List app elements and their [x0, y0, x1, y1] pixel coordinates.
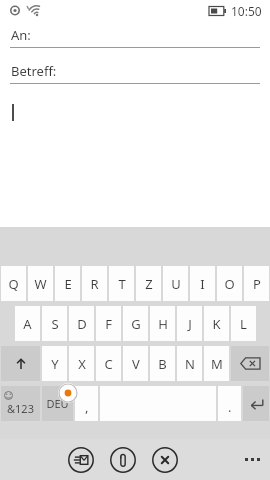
- staticText: X: [78, 355, 86, 373]
- button[interactable]: Betreff:: [0, 58, 270, 94]
- staticText: R: [90, 275, 99, 293]
- staticText: G: [131, 315, 141, 333]
- button[interactable]: More options: [245, 458, 260, 461]
- staticText: M: [211, 355, 223, 373]
- button[interactable]: F: [96, 306, 121, 341]
- button[interactable]: T: [109, 266, 134, 301]
- staticText: C: [104, 355, 113, 373]
- staticText: Z: [145, 275, 153, 293]
- button[interactable]: Q: [1, 266, 26, 301]
- staticText: B: [158, 355, 167, 373]
- staticText: J: [188, 315, 192, 333]
- staticText: E: [64, 275, 72, 293]
- button[interactable]: Y: [42, 346, 67, 381]
- button[interactable]: Shift: [1, 346, 40, 381]
- button[interactable]: Send: [66, 445, 96, 475]
- staticText: K: [212, 315, 221, 333]
- staticText: I: [200, 275, 205, 293]
- button[interactable]: I: [190, 266, 215, 301]
- button[interactable]: Backspace: [231, 346, 269, 381]
- button[interactable]: O: [217, 266, 242, 301]
- staticText: U: [171, 275, 181, 293]
- button[interactable]: S: [42, 306, 67, 341]
- staticText: ,: [85, 398, 89, 416]
- button[interactable]: M: [204, 346, 229, 381]
- staticText: &123: [7, 401, 34, 416]
- button[interactable]: B: [150, 346, 175, 381]
- button[interactable]: L: [231, 306, 256, 341]
- staticText: Y: [51, 355, 59, 373]
- button[interactable]: X: [69, 346, 94, 381]
- button[interactable]: Attach: [108, 445, 138, 475]
- button[interactable]: G: [123, 306, 148, 341]
- button[interactable]: K: [204, 306, 229, 341]
- button[interactable]: .: [218, 386, 241, 421]
- staticText: L: [240, 315, 247, 333]
- button[interactable]: DEU: [42, 386, 73, 421]
- button[interactable]: Z: [136, 266, 161, 301]
- button[interactable]: J: [177, 306, 202, 341]
- staticText: W: [34, 275, 47, 293]
- button[interactable]: Close: [150, 445, 180, 475]
- staticText: S: [51, 315, 59, 333]
- button[interactable]: N: [177, 346, 202, 381]
- staticText: Betreff:: [11, 62, 57, 80]
- staticText: DEU: [46, 396, 69, 411]
- staticText: A: [23, 315, 32, 333]
- button[interactable]: U: [163, 266, 188, 301]
- staticText: T: [118, 275, 126, 293]
- staticText: D: [77, 315, 87, 333]
- staticText: P: [253, 275, 261, 293]
- staticText: F: [105, 315, 112, 333]
- staticText: N: [185, 355, 195, 373]
- button[interactable]: W: [28, 266, 53, 301]
- button[interactable]: [0, 94, 270, 128]
- button[interactable]: Enter: [243, 386, 269, 421]
- button[interactable]: P: [244, 266, 269, 301]
- button[interactable]: E: [55, 266, 80, 301]
- button[interactable]: An:: [0, 22, 270, 58]
- button[interactable]: ,: [75, 386, 98, 421]
- button[interactable]: V: [123, 346, 148, 381]
- staticText: An:: [11, 26, 31, 44]
- button[interactable]: D: [69, 306, 94, 341]
- staticText: V: [132, 355, 140, 373]
- staticText: .: [228, 398, 232, 416]
- staticText: Q: [8, 275, 19, 293]
- button[interactable]: &123: [1, 386, 40, 421]
- button[interactable]: R: [82, 266, 107, 301]
- staticText: O: [224, 275, 235, 293]
- staticText: H: [158, 315, 168, 333]
- button[interactable]: A: [15, 306, 40, 341]
- button[interactable]: H: [150, 306, 175, 341]
- button[interactable]: C: [96, 346, 121, 381]
- staticText: 10:50: [231, 3, 262, 19]
